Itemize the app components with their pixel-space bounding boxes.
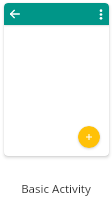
button[interactable]: More options xyxy=(92,3,109,25)
button[interactable]: Add xyxy=(78,126,100,148)
staticText: Basic Activity xyxy=(0,181,112,197)
button[interactable]: Navigate up xyxy=(4,3,26,25)
button[interactable]: Navigate up xyxy=(4,3,109,156)
